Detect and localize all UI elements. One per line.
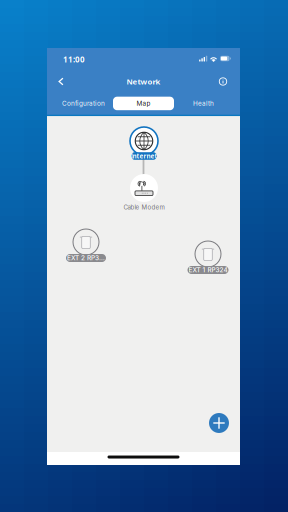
staticText: EXT 1 RP324 (188, 266, 227, 274)
staticText: Internet (130, 152, 157, 160)
staticText: EXT 2 RP3… (67, 254, 105, 262)
button[interactable]: EXT 2 RP3… (66, 229, 106, 263)
button[interactable]: EXT 1 RP324 (187, 241, 228, 275)
staticText: Map (136, 100, 150, 107)
button[interactable]: Information (212, 69, 234, 93)
staticText: Network (126, 76, 160, 87)
button[interactable]: Configuration (54, 97, 113, 110)
staticText: Configuration (62, 100, 105, 107)
button[interactable]: Cable Modem (122, 174, 166, 211)
staticText: Health (193, 100, 214, 107)
button[interactable]: Back (50, 69, 72, 93)
staticText: Cable Modem (123, 203, 164, 211)
button[interactable]: Health (174, 97, 233, 110)
staticText: 11:00 (63, 54, 85, 65)
button[interactable]: Map (113, 97, 174, 110)
button[interactable]: Add device (209, 413, 229, 433)
button[interactable]: Internet (127, 127, 161, 161)
